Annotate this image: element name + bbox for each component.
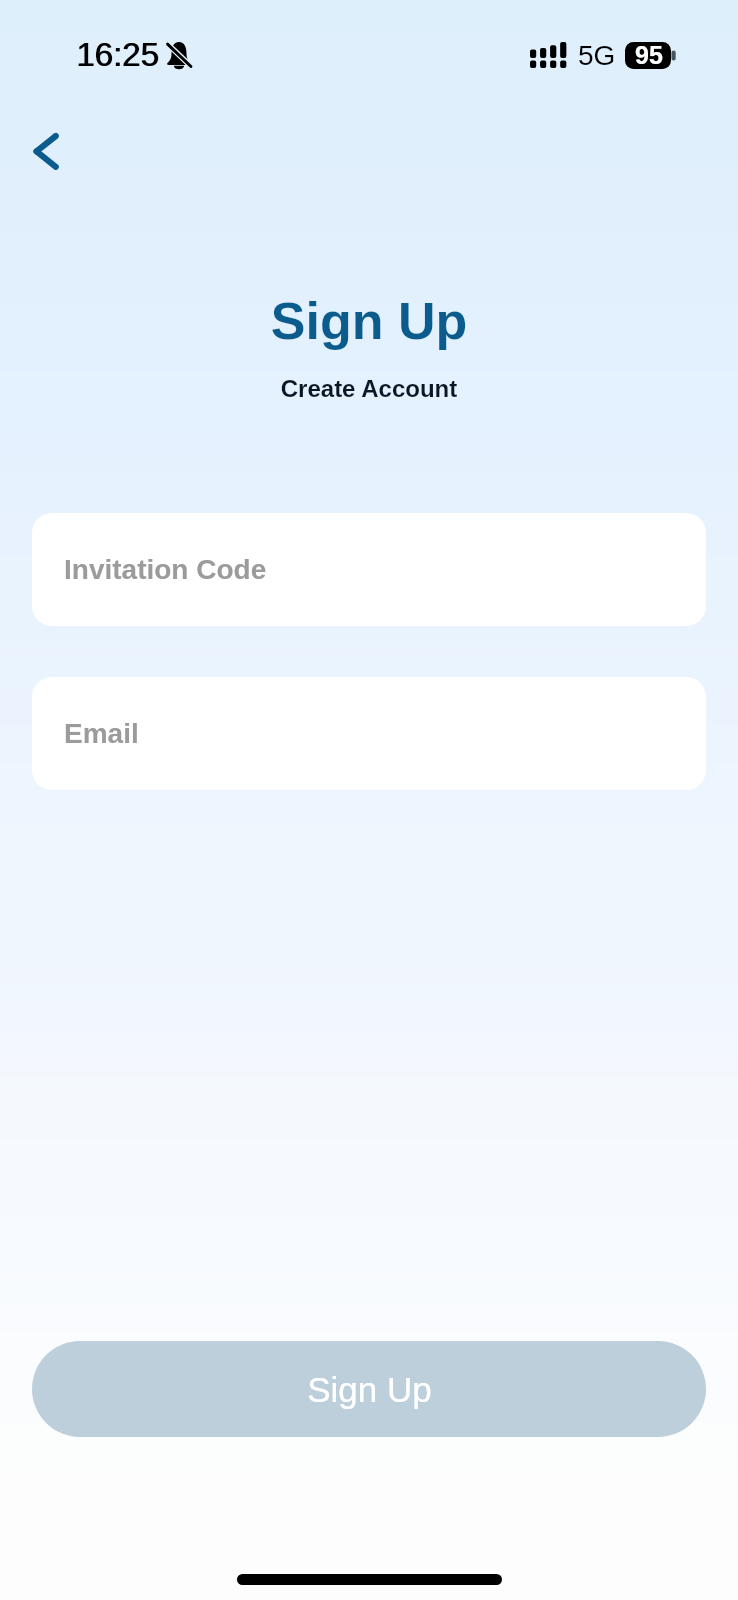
staticText: 5G — [578, 40, 616, 71]
staticText: Invitation Code — [64, 554, 267, 585]
button[interactable]: Email — [32, 677, 706, 790]
button[interactable]: Sign Up — [32, 1341, 706, 1437]
button[interactable]: Back — [6, 114, 82, 190]
staticText: Sign Up — [0, 292, 738, 350]
staticText: 16:25 — [76, 36, 159, 73]
staticText: 16:25 — [77, 36, 160, 73]
staticText: Email — [64, 718, 139, 749]
button[interactable]: Invitation Code — [32, 513, 706, 626]
staticText: Create Account — [0, 375, 738, 402]
staticText: Sign Up — [307, 1370, 432, 1409]
staticText: 95 — [626, 41, 672, 69]
